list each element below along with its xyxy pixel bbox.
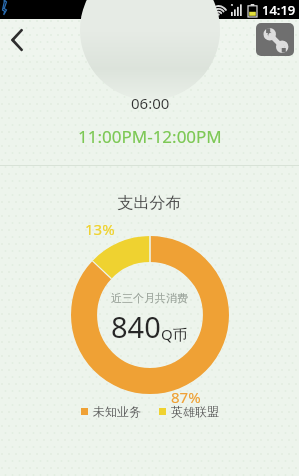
staticText: 840: [111, 307, 161, 346]
staticText: Q币: [161, 324, 188, 344]
staticText: 13%: [85, 219, 115, 239]
staticText: 06:00: [131, 93, 170, 113]
button[interactable]: 未知业务: [81, 404, 141, 419]
staticText: 支出分布: [0, 193, 299, 213]
button[interactable]: 英雄联盟: [159, 404, 219, 419]
staticText: 未知业务: [93, 404, 141, 419]
button[interactable]: Back: [0, 19, 34, 60]
staticText: 14:19: [262, 1, 296, 19]
staticText: 87%: [171, 387, 201, 407]
button[interactable]: Settings: [256, 23, 294, 56]
staticText: 英雄联盟: [171, 404, 219, 419]
staticText: 近三个月共消费: [111, 291, 188, 305]
staticText: 11:00PM-12:00PM: [78, 125, 222, 148]
